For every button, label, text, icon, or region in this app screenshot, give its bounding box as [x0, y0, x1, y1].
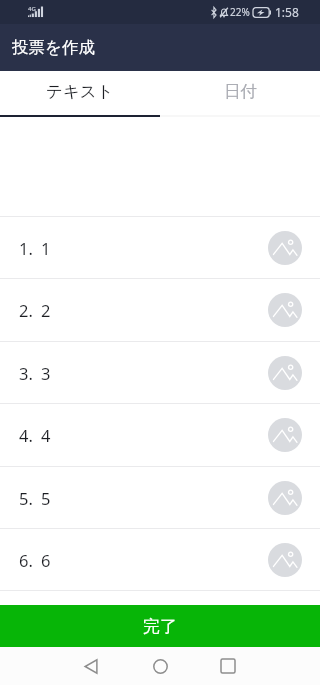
- button[interactable]: 5. 5: [0, 467, 320, 528]
- button[interactable]: Add image: [268, 293, 302, 327]
- staticText: テキスト: [46, 81, 114, 102]
- staticText: 5. 5: [19, 487, 51, 509]
- button[interactable]: Add image: [268, 481, 302, 515]
- staticText: 4G: [28, 5, 36, 13]
- button[interactable]: 2. 2: [0, 279, 320, 340]
- staticText: 投票を作成: [12, 37, 95, 58]
- button[interactable]: Add image: [268, 231, 302, 265]
- button[interactable]: テキスト: [0, 71, 160, 115]
- button[interactable]: 1. 1: [0, 217, 320, 278]
- button[interactable]: Recents: [204, 647, 252, 685]
- button[interactable]: Add image: [268, 543, 302, 577]
- staticText: 1. 1: [19, 237, 51, 259]
- button[interactable]: 完了: [0, 605, 320, 647]
- button[interactable]: Back: [67, 647, 115, 685]
- staticText: 3. 3: [19, 362, 51, 384]
- staticText: 1:58: [275, 4, 299, 20]
- button[interactable]: Add image: [268, 418, 302, 452]
- staticText: 完了: [143, 616, 177, 637]
- staticText: 6. 6: [19, 549, 51, 571]
- button[interactable]: 6. 6: [0, 529, 320, 590]
- staticText: 22%: [230, 5, 250, 19]
- button[interactable]: 3. 3: [0, 342, 320, 403]
- button[interactable]: 日付: [160, 71, 320, 115]
- button[interactable]: 4. 4: [0, 404, 320, 465]
- button[interactable]: Home: [136, 647, 184, 685]
- staticText: 4. 4: [19, 424, 51, 446]
- staticText: 2. 2: [19, 299, 51, 321]
- button[interactable]: Add image: [268, 356, 302, 390]
- staticText: 日付: [224, 81, 257, 102]
